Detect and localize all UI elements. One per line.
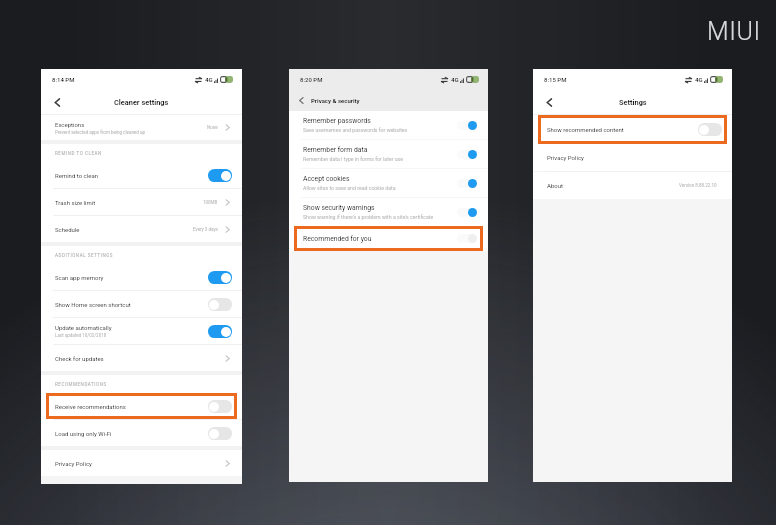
staticText: Remind to clean: [55, 172, 98, 179]
button[interactable]: Back: [49, 94, 65, 110]
staticText: Schedule: [55, 226, 80, 233]
button[interactable]: On: [456, 207, 477, 218]
staticText: Last updated 10/02/2018: [55, 333, 107, 338]
button[interactable]: Show security warnings: [289, 198, 488, 226]
button[interactable]: Remind to clean: [41, 162, 242, 188]
staticText: MIUI: [707, 17, 761, 46]
button[interactable]: Show recommended content: [533, 115, 732, 144]
button[interactable]: On: [456, 120, 477, 131]
staticText: None: [207, 125, 218, 130]
staticText: Show warning if there's a problem with a…: [303, 214, 434, 220]
button[interactable]: Trash size limit: [41, 189, 242, 215]
staticText: Check for updates: [55, 355, 104, 362]
button[interactable]: Toggle on: [208, 325, 232, 338]
button[interactable]: Privacy Policy: [41, 450, 242, 476]
staticText: Recommended for you: [303, 235, 456, 243]
staticText: 8:20 PM: [300, 76, 323, 83]
staticText: Every 3 days: [193, 227, 218, 232]
staticText: Show Home screen shortcut: [55, 301, 131, 308]
staticText: REMIND TO CLEAN: [55, 151, 102, 156]
staticText: Prevent selected apps from being cleaned…: [55, 130, 145, 135]
staticText: Version 8.88.22.10: [679, 183, 717, 188]
button[interactable]: Privacy Policy: [533, 144, 732, 171]
button[interactable]: Off: [456, 233, 477, 244]
staticText: Accept cookies: [303, 175, 350, 183]
staticText: Save usernames and passwords for website…: [303, 127, 408, 133]
button[interactable]: Receive recommendations: [41, 393, 242, 419]
button[interactable]: Toggle on: [208, 169, 232, 182]
staticText: Show security warnings: [303, 204, 375, 212]
staticText: 4G: [451, 76, 459, 83]
staticText: Remember data I type in forms for later …: [303, 156, 403, 162]
staticText: 4G: [695, 76, 703, 83]
button[interactable]: Check for updates: [41, 345, 242, 371]
staticText: Remember passwords: [303, 117, 371, 125]
staticText: Exceptions: [55, 121, 85, 128]
staticText: Privacy Policy: [55, 460, 92, 467]
staticText: Receive recommendations: [55, 403, 126, 410]
button[interactable]: Accept cookies: [289, 169, 488, 197]
button[interactable]: Remember passwords: [289, 111, 488, 139]
button[interactable]: Recommended for you: [289, 226, 488, 251]
staticText: About: [547, 182, 563, 189]
staticText: Show recommended content: [547, 126, 624, 133]
button[interactable]: On: [456, 178, 477, 189]
staticText: 100MB: [203, 200, 218, 205]
staticText: 4G: [205, 76, 213, 83]
button[interactable]: Exceptions: [41, 115, 242, 140]
button[interactable]: Back: [541, 94, 557, 110]
button[interactable]: Show Home screen shortcut: [41, 291, 242, 317]
staticText: Load using only Wi-Fi: [55, 430, 112, 437]
button[interactable]: Load using only Wi-Fi: [41, 420, 242, 446]
button[interactable]: Remember form data: [289, 140, 488, 168]
staticText: ADDITIONAL SETTINGS: [55, 253, 114, 258]
button[interactable]: On: [456, 149, 477, 160]
staticText: RECOMMENDATIONS: [55, 382, 107, 387]
staticText: 8:14 PM: [52, 76, 75, 83]
staticText: Privacy Policy: [547, 154, 584, 161]
staticText: Update automatically: [55, 324, 112, 331]
staticText: Settings: [619, 98, 647, 107]
staticText: 8:15 PM: [544, 76, 567, 83]
button[interactable]: Toggle off: [208, 427, 232, 440]
staticText: Remember form data: [303, 146, 368, 154]
staticText: Privacy & security: [311, 97, 360, 104]
button[interactable]: Toggle on: [208, 271, 232, 284]
staticText: Scan app memory: [55, 274, 104, 281]
button[interactable]: Toggle off: [208, 400, 232, 413]
button[interactable]: About: [533, 172, 732, 199]
staticText: Allow sites to save and read cookie data: [303, 185, 396, 191]
button[interactable]: Toggle off: [208, 298, 232, 311]
button[interactable]: Schedule: [41, 216, 242, 242]
button[interactable]: Update automatically: [41, 318, 242, 344]
button[interactable]: Scan app memory: [41, 264, 242, 290]
button[interactable]: Toggle off: [698, 123, 722, 136]
staticText: Trash size limit: [55, 199, 96, 206]
staticText: Cleaner settings: [114, 98, 169, 107]
button[interactable]: Back: [295, 94, 308, 107]
